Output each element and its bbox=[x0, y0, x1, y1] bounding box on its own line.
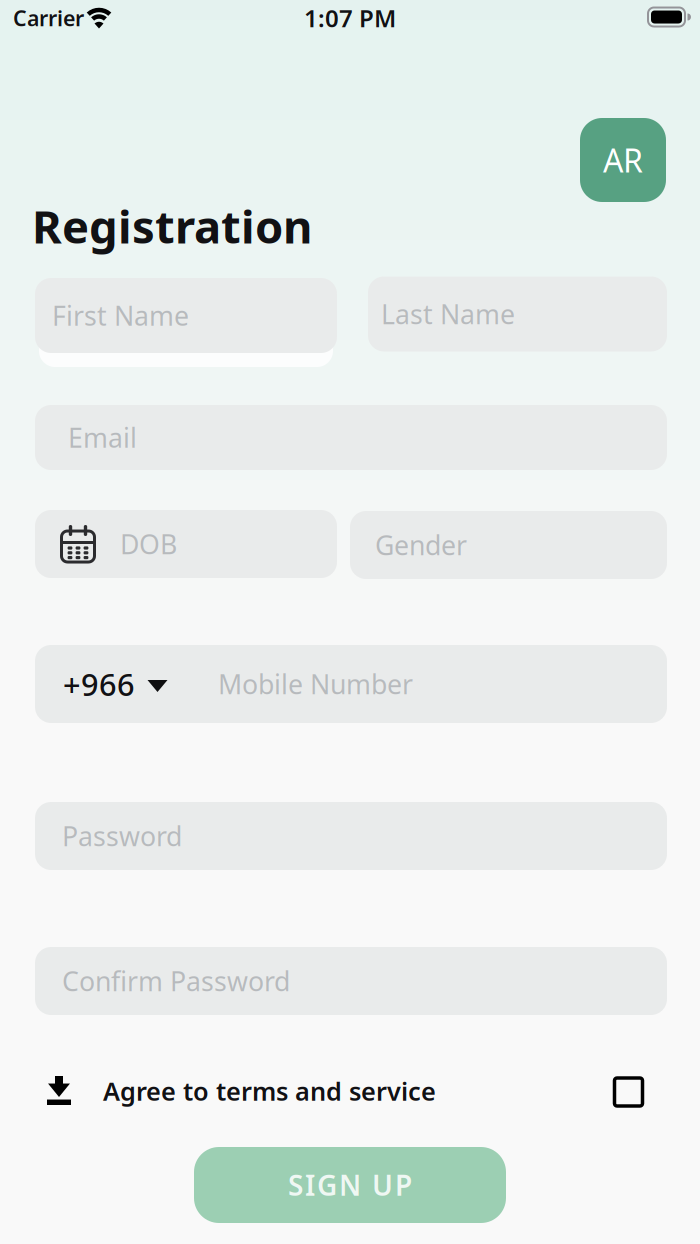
staticText: Password bbox=[62, 818, 182, 854]
button[interactable]: Gender bbox=[350, 511, 667, 579]
button[interactable]: Agree to terms checkbox bbox=[614, 1078, 642, 1106]
button[interactable]: Date of birth bbox=[35, 510, 337, 578]
staticText: Email bbox=[68, 420, 137, 455]
staticText: Carrier bbox=[13, 4, 84, 32]
textField[interactable]: Mobile Number bbox=[218, 666, 413, 702]
textField[interactable]: Email bbox=[35, 405, 667, 470]
staticText: 1:07 PM bbox=[304, 2, 396, 34]
staticText: Mobile Number bbox=[218, 666, 413, 702]
staticText: Confirm Password bbox=[62, 963, 290, 999]
staticText: First Name bbox=[52, 298, 189, 333]
staticText: Agree to terms and service bbox=[103, 1074, 436, 1108]
button[interactable]: SIGN UP bbox=[194, 1147, 506, 1223]
staticText: +966 bbox=[63, 664, 135, 704]
staticText: Last Name bbox=[381, 296, 515, 332]
secureTextField[interactable]: Password bbox=[35, 802, 667, 870]
secureTextField[interactable]: Confirm Password bbox=[35, 947, 667, 1015]
staticText: Gender bbox=[375, 527, 467, 563]
staticText: SIGN UP bbox=[288, 1166, 412, 1204]
textField[interactable]: First Name bbox=[35, 278, 337, 353]
button[interactable]: Country code +966 bbox=[35, 664, 168, 704]
staticText: AR bbox=[603, 139, 643, 181]
button[interactable]: Switch language to Arabic bbox=[580, 118, 666, 202]
staticText: DOB bbox=[120, 526, 177, 562]
staticText: Registration bbox=[32, 196, 312, 256]
textField[interactable]: Last Name bbox=[368, 276, 667, 351]
